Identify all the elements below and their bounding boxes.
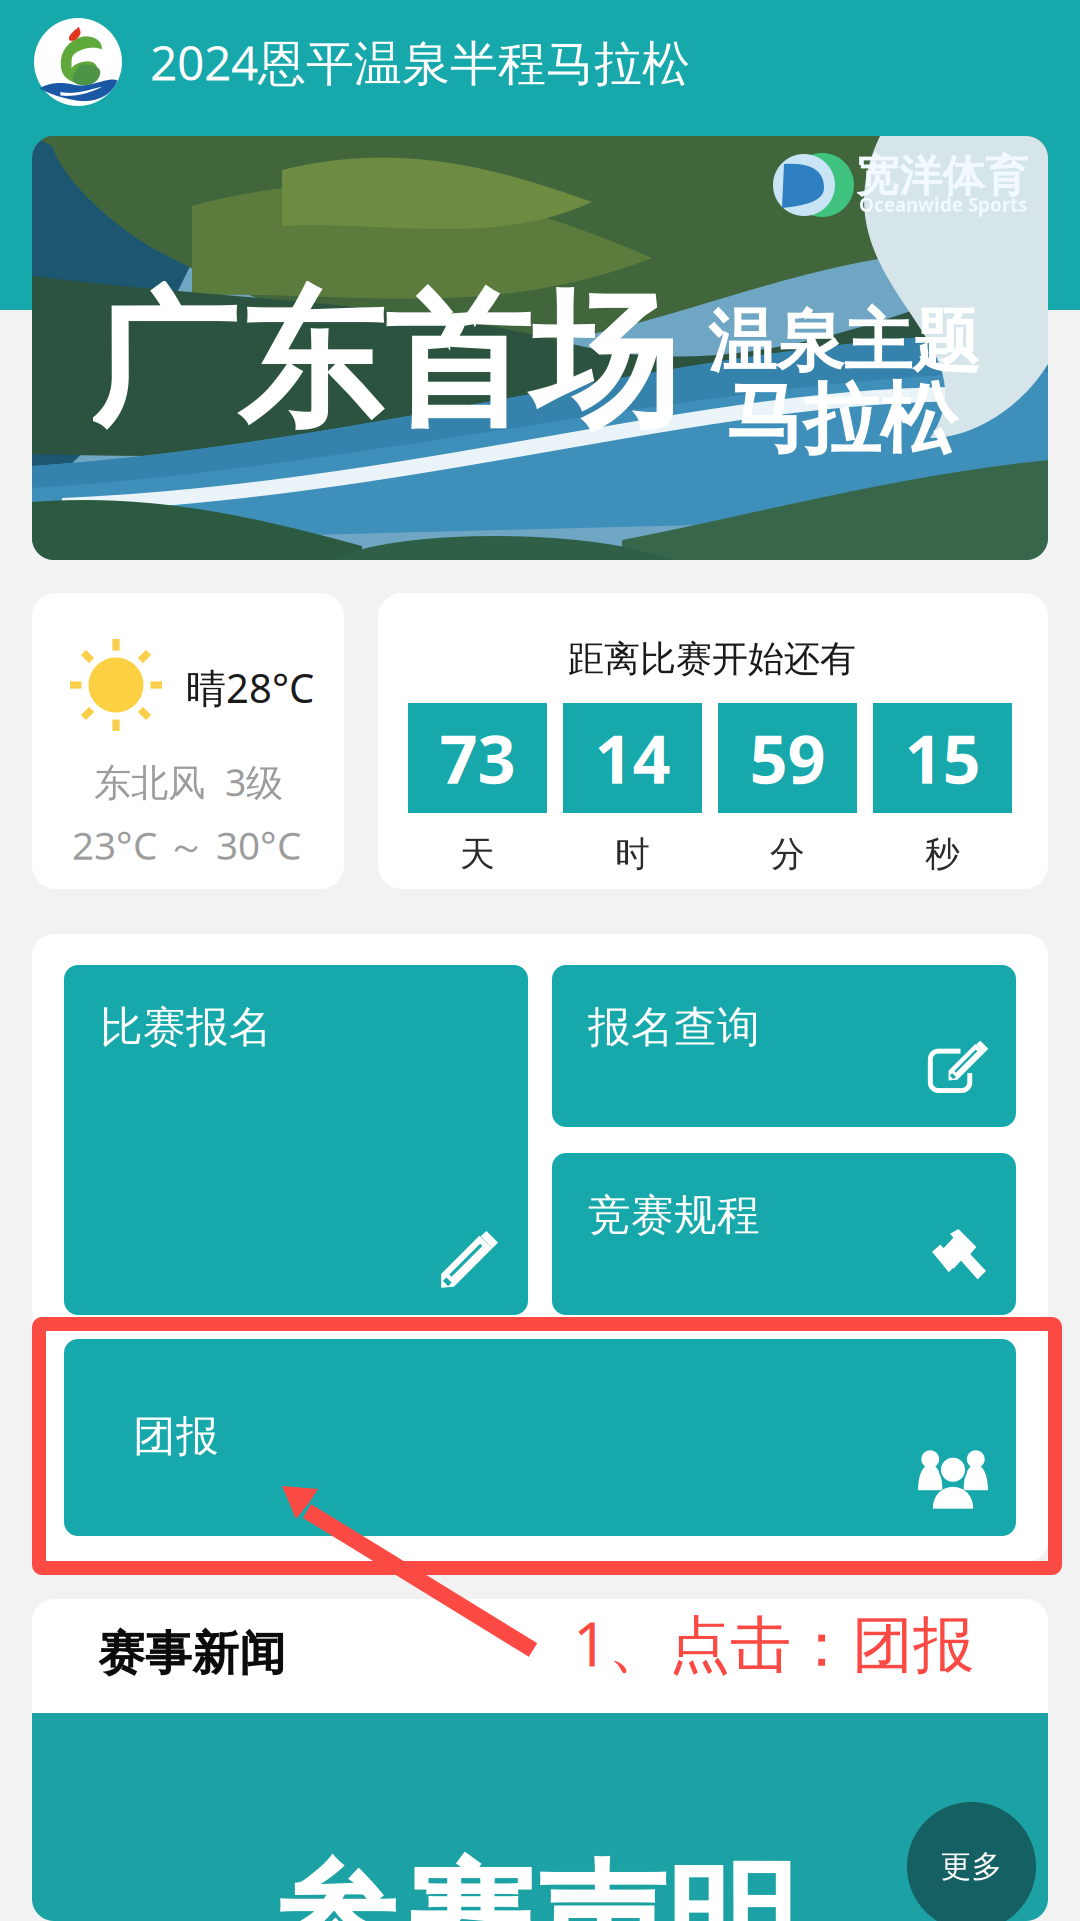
staticText: 距离比赛开始还有 <box>568 637 856 681</box>
staticText: 14 <box>594 714 670 802</box>
staticText: 59 <box>749 714 825 802</box>
staticText: 宽洋体育 <box>856 150 1028 202</box>
button[interactable]: 报名查询 <box>552 965 1016 1127</box>
staticText: 2024恩平温泉半程马拉松 <box>150 30 690 94</box>
button[interactable]: 团报 <box>64 1339 1016 1536</box>
staticText: 马拉松 <box>726 372 957 467</box>
button[interactable]: 赛事海报 <box>32 136 1048 560</box>
button[interactable]: 比赛报名 <box>64 965 528 1315</box>
staticText: 23°C ～ 30°C <box>72 819 301 870</box>
staticText: 竞赛规程 <box>588 1189 760 1241</box>
button[interactable]: 更多 <box>907 1802 1036 1921</box>
staticText: 晴28°C <box>186 661 314 714</box>
staticText: 东北风 3级 <box>94 757 283 807</box>
staticText: 比赛报名 <box>100 1001 272 1053</box>
staticText: Oceanwide Sports <box>859 192 1027 217</box>
staticText: 更多 <box>940 1848 1002 1885</box>
staticText: 73 <box>439 714 515 802</box>
staticText: 赛事新闻 <box>98 1625 286 1682</box>
staticText: 天 <box>460 833 495 876</box>
staticText: 分 <box>770 833 805 876</box>
button[interactable]: 竞赛规程 <box>552 1153 1016 1315</box>
staticText: 参赛声明 <box>270 1845 798 1921</box>
staticText: 15 <box>904 714 980 802</box>
button[interactable]: 2024恩平温泉半程马拉松 <box>34 18 690 106</box>
staticText: 时 <box>615 833 650 876</box>
staticText: 温泉主题 <box>708 300 980 383</box>
staticText: 广东首场 <box>90 272 678 452</box>
staticText: 团报 <box>133 1410 219 1462</box>
staticText: 报名查询 <box>588 1001 760 1053</box>
staticText: 1、点击：团报 <box>573 1602 974 1683</box>
staticText: 秒 <box>925 833 960 876</box>
